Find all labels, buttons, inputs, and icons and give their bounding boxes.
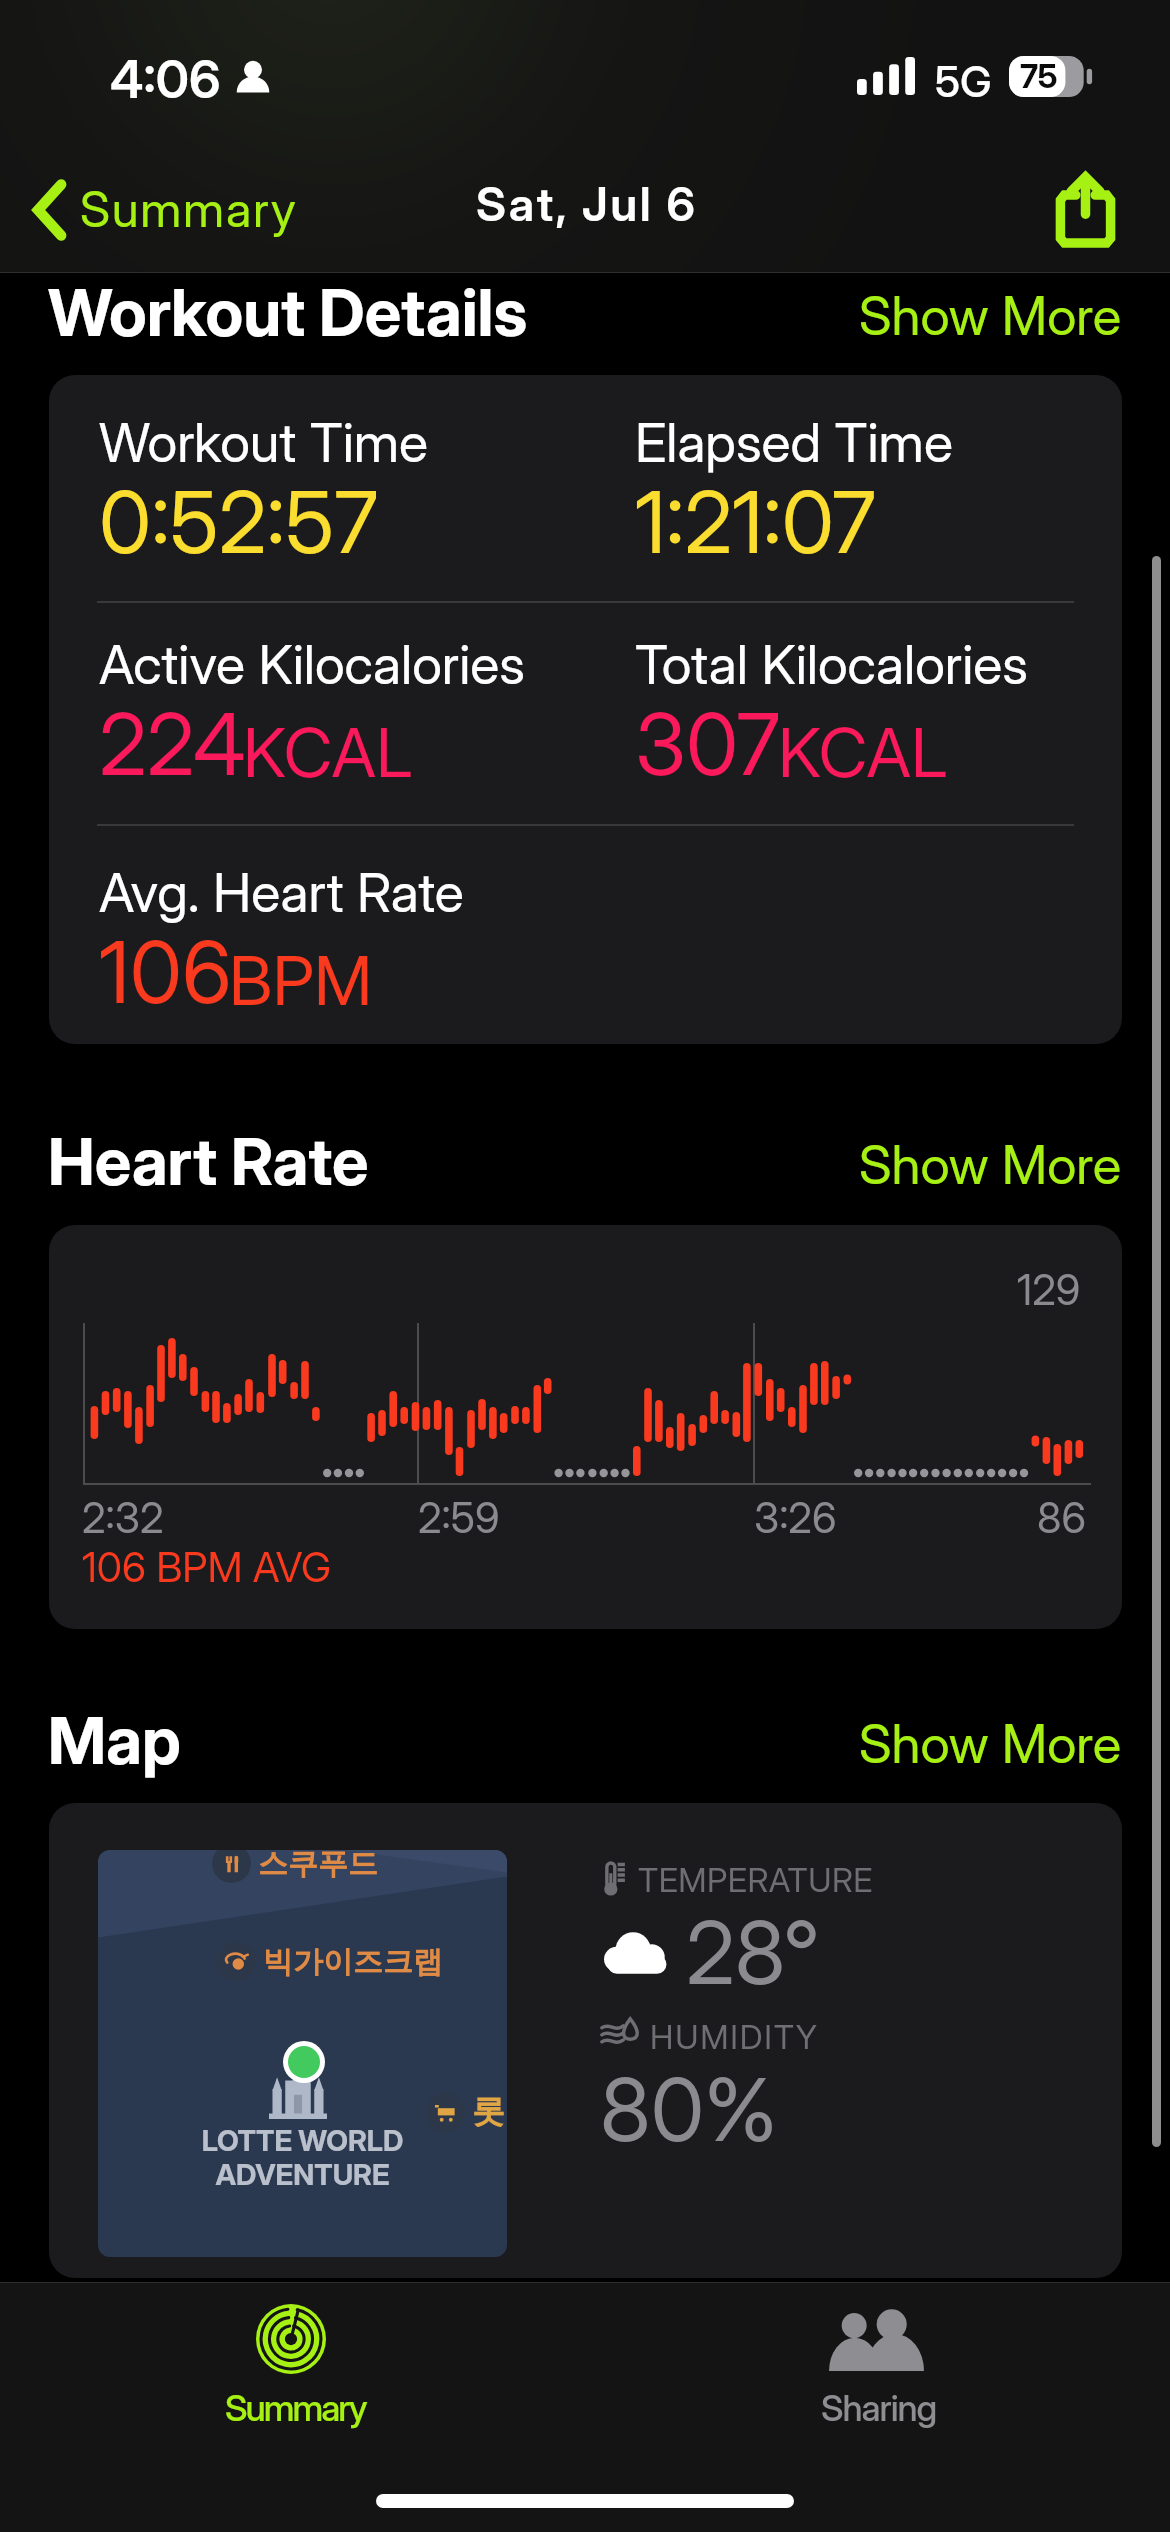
staticText: Workout Time — [99, 410, 429, 475]
staticText: 3:26 — [754, 1492, 837, 1543]
staticText: 2:59 — [418, 1492, 500, 1543]
staticText: 28° — [686, 1900, 820, 2005]
staticText: Heart Rate — [48, 1122, 369, 1201]
staticText: 224 — [99, 693, 246, 796]
staticText: 106 BPM AVG — [82, 1542, 331, 1592]
staticText: 0:52:57 — [99, 471, 379, 574]
staticText: Avg. Heart Rate — [99, 860, 464, 925]
staticText: Summary — [80, 180, 298, 239]
staticText: 80% — [600, 2057, 778, 2162]
button[interactable]: Show More — [859, 284, 1122, 348]
staticText: Summary — [225, 2386, 366, 2430]
staticText: 75 — [1020, 56, 1058, 96]
staticText: 129 — [1017, 1264, 1081, 1315]
staticText: TEMPERATURE — [638, 1860, 873, 1900]
staticText: 86 — [1037, 1492, 1086, 1543]
staticText: 5G — [935, 55, 992, 107]
staticText: Show More — [859, 1133, 1122, 1197]
staticText: LOTTE WORLD ADVENTURE — [98, 2123, 507, 2192]
staticText: 빅가이즈크랩 — [263, 1943, 443, 1981]
button[interactable]: Sharing — [747, 2291, 1007, 2436]
staticText: KCAL — [778, 711, 948, 793]
staticText: HUMIDITY — [650, 2017, 819, 2057]
button[interactable]: Share — [1037, 161, 1133, 257]
staticText: Elapsed Time — [635, 410, 953, 475]
button[interactable]: Summary — [33, 160, 298, 260]
button[interactable]: Show More — [859, 1133, 1122, 1197]
staticText: 106 — [99, 921, 232, 1024]
staticText: Sat, Jul 6 — [476, 175, 698, 232]
staticText: 스쿠푸드 — [258, 1850, 378, 1883]
staticText: Show More — [859, 284, 1122, 348]
button[interactable]: Summary — [161, 2291, 421, 2436]
staticText: 4:06 — [110, 48, 221, 111]
staticText: Workout Details — [48, 273, 528, 352]
staticText: 2:32 — [82, 1492, 164, 1543]
staticText: 307 — [635, 693, 781, 796]
button[interactable]: Show More — [859, 1712, 1122, 1776]
staticText: Total Kilocalories — [635, 632, 1028, 697]
staticText: 1:21:07 — [635, 471, 876, 574]
staticText: Active Kilocalories — [99, 632, 525, 697]
staticText: 롯 — [472, 2091, 505, 2133]
staticText: Show More — [859, 1712, 1122, 1776]
staticText: BPM — [229, 939, 373, 1021]
staticText: Sharing — [821, 2386, 937, 2430]
staticText: Map — [48, 1701, 181, 1780]
staticText: KCAL — [243, 711, 413, 793]
